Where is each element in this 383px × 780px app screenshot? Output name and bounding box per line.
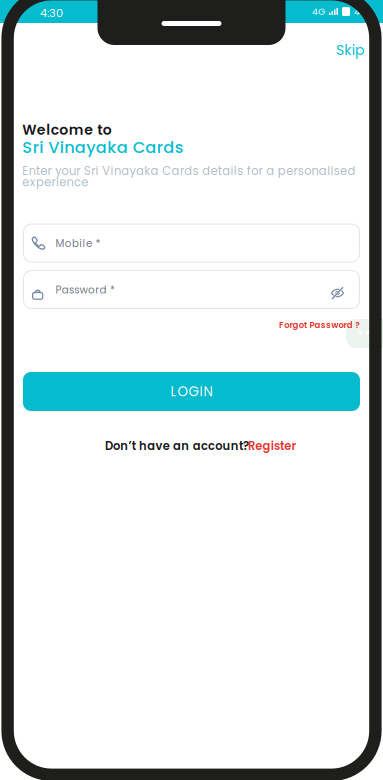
button[interactable]: Show password: [330, 286, 345, 300]
staticText: Don’t have an account?: [105, 438, 249, 454]
button[interactable]: Forgot Password ?: [279, 319, 363, 331]
staticText: Forgot Password ?: [279, 319, 360, 331]
staticText: Skip: [336, 40, 364, 60]
staticText: Password *: [55, 283, 115, 297]
staticText: Register: [248, 438, 296, 454]
staticText: 4G: [312, 5, 325, 18]
staticText: Enter your Sri Vinayaka Cards details fo…: [22, 163, 355, 190]
button[interactable]: Skip: [332, 39, 368, 61]
button[interactable]: Register: [248, 440, 300, 452]
staticText: Sri Vinayaka Cards: [22, 136, 184, 159]
button[interactable]: LOGIN: [23, 372, 360, 411]
staticText: 4:30: [40, 5, 63, 21]
staticText: Welcome to: [22, 120, 112, 140]
staticText: LOGIN: [170, 382, 212, 401]
staticText: Mobile *: [55, 236, 100, 251]
staticText: 46: [354, 5, 366, 18]
